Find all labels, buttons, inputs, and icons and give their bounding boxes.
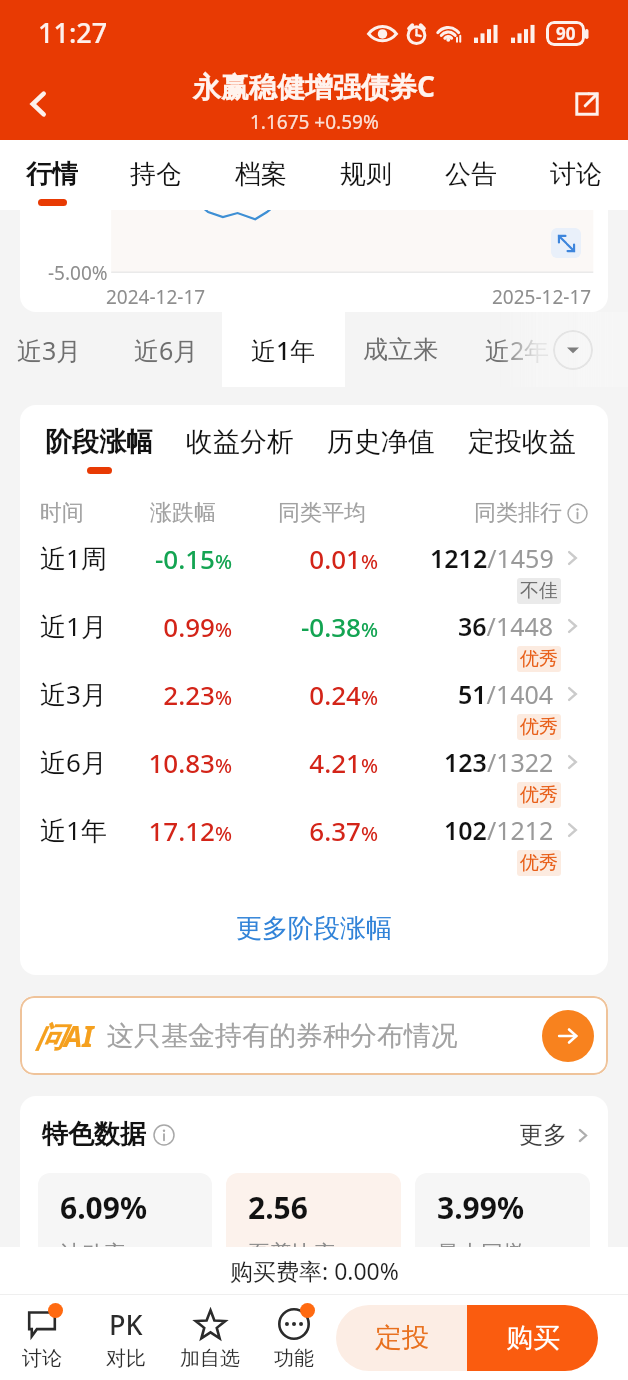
- staticText: 加自选: [180, 1346, 240, 1371]
- staticText: 规则: [340, 158, 392, 191]
- staticText: 永赢稳健增强债券C: [193, 67, 435, 105]
- button[interactable]: 近1年: [233, 312, 333, 387]
- staticText: 历史净值: [327, 425, 435, 459]
- staticText: 3.99%: [437, 1187, 524, 1228]
- staticText: 近6月: [40, 744, 107, 780]
- staticText: 夏普比率: [248, 1240, 336, 1268]
- staticText: 阶段涨幅: [45, 425, 153, 459]
- staticText: 优秀: [520, 647, 558, 671]
- staticText: 不佳: [520, 579, 558, 603]
- staticText: 持仓: [130, 158, 182, 191]
- staticText: 讨论: [550, 158, 602, 191]
- staticText: 2024-12-17: [106, 284, 206, 310]
- staticText: 近1月: [40, 608, 107, 644]
- button[interactable]: Ask AI: [542, 1010, 594, 1062]
- staticText: 行情: [26, 158, 78, 191]
- button[interactable]: 阶段涨幅: [34, 425, 164, 481]
- staticText: 对比: [106, 1346, 146, 1371]
- button[interactable]: 问AI: [20, 996, 608, 1075]
- staticText: -0.15%: [20, 541, 232, 576]
- staticText: 102/1212: [444, 813, 554, 847]
- button[interactable]: Back: [16, 81, 62, 127]
- staticText: 近1年: [251, 333, 316, 367]
- staticText: 档案: [235, 158, 287, 191]
- button[interactable]: 近2年: [467, 312, 567, 387]
- staticText: 更多阶段涨幅: [236, 912, 392, 945]
- button[interactable]: 档案: [208, 140, 313, 210]
- staticText: 1.1675 +0.59%: [250, 109, 379, 135]
- button[interactable]: 近6月: [116, 312, 216, 387]
- button[interactable]: 近1月: [20, 595, 608, 663]
- staticText: 近6月: [134, 333, 199, 367]
- staticText: 1212/1459: [430, 541, 554, 575]
- button[interactable]: PK: [84, 1302, 168, 1373]
- staticText: 时间: [40, 499, 84, 527]
- staticText: 近1年: [40, 812, 107, 848]
- button[interactable]: 近6月: [20, 731, 608, 799]
- staticText: 0.99%: [20, 609, 232, 644]
- button[interactable]: 近3月: [20, 663, 608, 731]
- staticText: 2.23%: [20, 677, 232, 712]
- staticText: 收益分析: [186, 425, 294, 459]
- button[interactable]: 行情: [0, 140, 104, 210]
- button[interactable]: 规则: [313, 140, 418, 210]
- staticText: 问AI: [35, 1016, 94, 1056]
- button[interactable]: Fullscreen: [551, 228, 581, 258]
- staticText: 成立来: [363, 334, 438, 365]
- button[interactable]: 6.09%: [38, 1173, 212, 1286]
- button[interactable]: 定投收益: [457, 425, 587, 481]
- staticText: 波动率: [60, 1240, 126, 1268]
- staticText: 6.37%: [20, 813, 378, 848]
- button[interactable]: 持仓: [104, 140, 208, 210]
- button[interactable]: 近1年: [20, 799, 608, 867]
- staticText: 购买: [506, 1321, 560, 1355]
- staticText: 近3月: [17, 333, 82, 367]
- button[interactable]: 定投: [336, 1305, 467, 1371]
- button[interactable]: 成立来: [350, 312, 450, 387]
- staticText: 10.83%: [20, 745, 232, 780]
- staticText: 涨跌幅: [150, 499, 216, 527]
- staticText: 优秀: [520, 851, 558, 875]
- button[interactable]: 历史净值: [316, 425, 446, 481]
- staticText: -0.38%: [20, 609, 378, 644]
- staticText: 购买费率: 0.00%: [230, 1255, 399, 1286]
- button[interactable]: 收益分析: [175, 425, 305, 481]
- button[interactable]: 近1周: [20, 527, 608, 595]
- staticText: 36/1448: [458, 609, 554, 643]
- staticText: 最大回撤: [437, 1240, 525, 1268]
- button[interactable]: 讨论: [523, 140, 628, 210]
- staticText: 123/1322: [444, 745, 554, 779]
- button[interactable]: 讨论: [0, 1302, 84, 1373]
- button[interactable]: 加自选: [168, 1302, 252, 1373]
- staticText: 优秀: [520, 783, 558, 807]
- staticText: 4.21%: [20, 745, 378, 780]
- staticText: -5.00%: [48, 260, 108, 286]
- button[interactable]: 功能: [252, 1302, 336, 1373]
- button[interactable]: 近3月: [0, 312, 99, 387]
- staticText: 定投收益: [468, 425, 576, 459]
- staticText: 讨论: [22, 1346, 62, 1371]
- staticText: 特色数据: [42, 1118, 146, 1151]
- staticText: 近2年: [485, 333, 550, 367]
- staticText: 51/1404: [458, 677, 554, 711]
- staticText: 定投: [375, 1321, 429, 1355]
- staticText: 同类平均: [278, 499, 366, 527]
- button[interactable]: 更多: [519, 1120, 590, 1150]
- button[interactable]: 更多阶段涨幅: [20, 867, 608, 975]
- staticText: 11:27: [38, 14, 108, 51]
- staticText: 2025-12-17: [492, 284, 592, 310]
- staticText: 近3月: [40, 676, 107, 712]
- button[interactable]: 2.56: [226, 1173, 401, 1286]
- button[interactable]: 公告: [418, 140, 523, 210]
- staticText: 90: [556, 22, 576, 45]
- button[interactable]: Share: [564, 81, 610, 127]
- button[interactable]: 3.99%: [415, 1173, 590, 1286]
- staticText: 近1周: [40, 540, 107, 576]
- staticText: 功能: [274, 1346, 314, 1371]
- staticText: PK: [109, 1306, 143, 1343]
- button[interactable]: 购买: [467, 1305, 598, 1371]
- staticText: 这只基金持有的券种分布情况: [107, 1019, 458, 1053]
- button[interactable]: More ranges: [553, 330, 593, 370]
- staticText: 优秀: [520, 715, 558, 739]
- staticText: 0.24%: [20, 677, 378, 712]
